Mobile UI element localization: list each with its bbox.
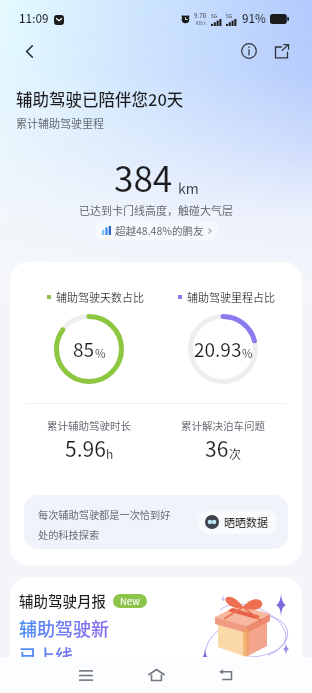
staticText: KB/s [196,20,206,27]
staticText: km [178,178,199,198]
button[interactable]: 晒晒数据 [198,510,277,534]
staticText: 辅助驾驶里程占比 [187,289,275,305]
staticText: 辅助驾驶月报 [19,590,106,611]
staticText: h [106,445,114,462]
staticText: New [120,594,140,608]
staticText: 5.96 [65,433,106,463]
staticText: 85 [73,335,95,363]
staticText: 5G [211,12,218,19]
staticText: 累计辅助驾驶里程 [16,115,104,131]
staticText: 每次辅助驾驶都是一次恰到好处的科技探索 [38,507,175,542]
staticText: 384 [114,151,173,202]
staticText: 已达到卡门线高度，触碰大气层 [0,202,312,218]
staticText: 晒晒数据 [224,514,268,530]
staticText: 累计辅助驾驶时长 [47,418,131,433]
staticText: 5G [226,12,233,19]
staticText: 辅助驾驶天数占比 [56,289,144,305]
button[interactable]: Info [234,36,264,66]
button[interactable]: Share [266,36,296,66]
staticText: 次 [229,445,242,462]
button[interactable]: 辅助驾驶月报 [10,577,302,687]
staticText: 20.93 [194,335,242,363]
staticText: 11:09 [19,10,49,27]
staticText: 辅助驾驶新 已上线 [19,615,109,668]
button[interactable]: Recents [71,660,101,690]
staticText: % [95,345,106,362]
staticText: 9.70 [194,11,207,20]
staticText: 91% [242,10,266,27]
staticText: % [242,345,253,362]
staticText: 36 [205,433,229,463]
button[interactable]: Back [210,660,240,690]
button[interactable]: 超越48.48%的鹏友 [95,221,218,240]
staticText: 辅助驾驶已陪伴您20天 [16,87,184,111]
staticText: 超越48.48%的鹏友 [115,223,204,238]
staticText: 累计解决泊车问题 [181,418,265,433]
button[interactable]: Back [14,36,44,66]
button[interactable]: Home [141,660,171,690]
